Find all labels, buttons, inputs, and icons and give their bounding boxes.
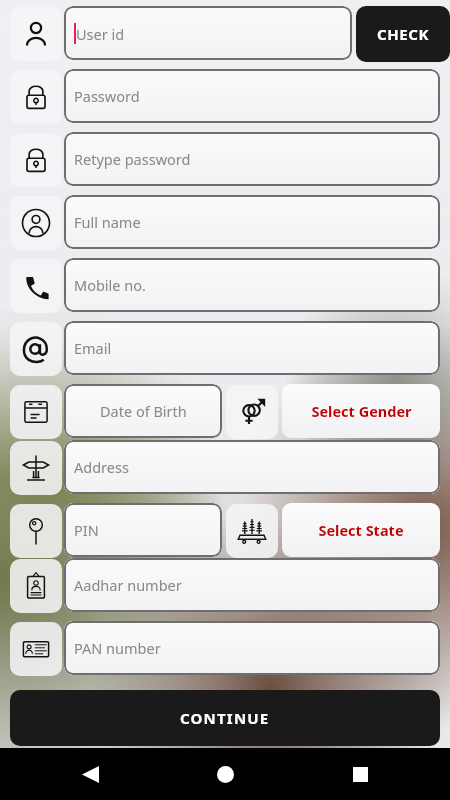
button[interactable]: CONTINUE bbox=[10, 690, 440, 746]
staticText: Date of Birth bbox=[100, 401, 187, 421]
other: User id bbox=[21, 19, 51, 49]
staticText: Mobile no. bbox=[74, 275, 146, 295]
button[interactable]: Recents bbox=[340, 754, 380, 794]
staticText: CHECK bbox=[377, 24, 430, 44]
button[interactable]: User id bbox=[64, 6, 352, 60]
staticText: CONTINUE bbox=[180, 708, 270, 728]
button[interactable]: Email bbox=[64, 321, 440, 375]
other: Email bbox=[21, 334, 51, 364]
button[interactable]: Select State bbox=[282, 503, 440, 557]
staticText: Address bbox=[74, 457, 129, 477]
button[interactable]: Aadhar number bbox=[64, 558, 440, 612]
button[interactable]: Home bbox=[205, 754, 245, 794]
staticText: PIN bbox=[74, 520, 99, 540]
button[interactable]: Full name bbox=[64, 195, 440, 249]
staticText: Retype password bbox=[74, 149, 191, 169]
button[interactable]: Retype password bbox=[64, 132, 440, 186]
staticText: User id bbox=[76, 24, 125, 44]
button[interactable]: Mobile no. bbox=[64, 258, 440, 312]
other: Select gender bbox=[237, 397, 267, 427]
staticText: Email bbox=[74, 338, 112, 358]
staticText: Password bbox=[74, 86, 140, 106]
button[interactable]: Password bbox=[64, 69, 440, 123]
staticText: Select Gender bbox=[311, 401, 412, 421]
other: Full name bbox=[21, 208, 51, 238]
staticText: Select State bbox=[318, 520, 404, 540]
staticText: Aadhar number bbox=[74, 575, 182, 595]
button[interactable]: Address bbox=[64, 440, 440, 494]
other: Address bbox=[21, 453, 51, 483]
button[interactable]: PIN bbox=[64, 503, 222, 557]
other: Mobile number bbox=[21, 271, 51, 301]
other: Date of birth bbox=[21, 397, 51, 427]
button[interactable]: Date of Birth bbox=[64, 384, 222, 438]
other: Select state bbox=[237, 516, 267, 546]
other: Aadhar number bbox=[21, 571, 51, 601]
button[interactable]: PAN number bbox=[64, 621, 440, 675]
button[interactable]: Back bbox=[70, 754, 110, 794]
button[interactable]: CHECK bbox=[356, 6, 450, 62]
other: PAN number bbox=[21, 634, 51, 664]
staticText: Full name bbox=[74, 212, 141, 232]
other: PIN code bbox=[21, 516, 51, 546]
staticText: PAN number bbox=[74, 638, 161, 658]
other: Password bbox=[21, 145, 51, 175]
button[interactable]: Select Gender bbox=[282, 384, 440, 438]
other: Password bbox=[21, 82, 51, 112]
